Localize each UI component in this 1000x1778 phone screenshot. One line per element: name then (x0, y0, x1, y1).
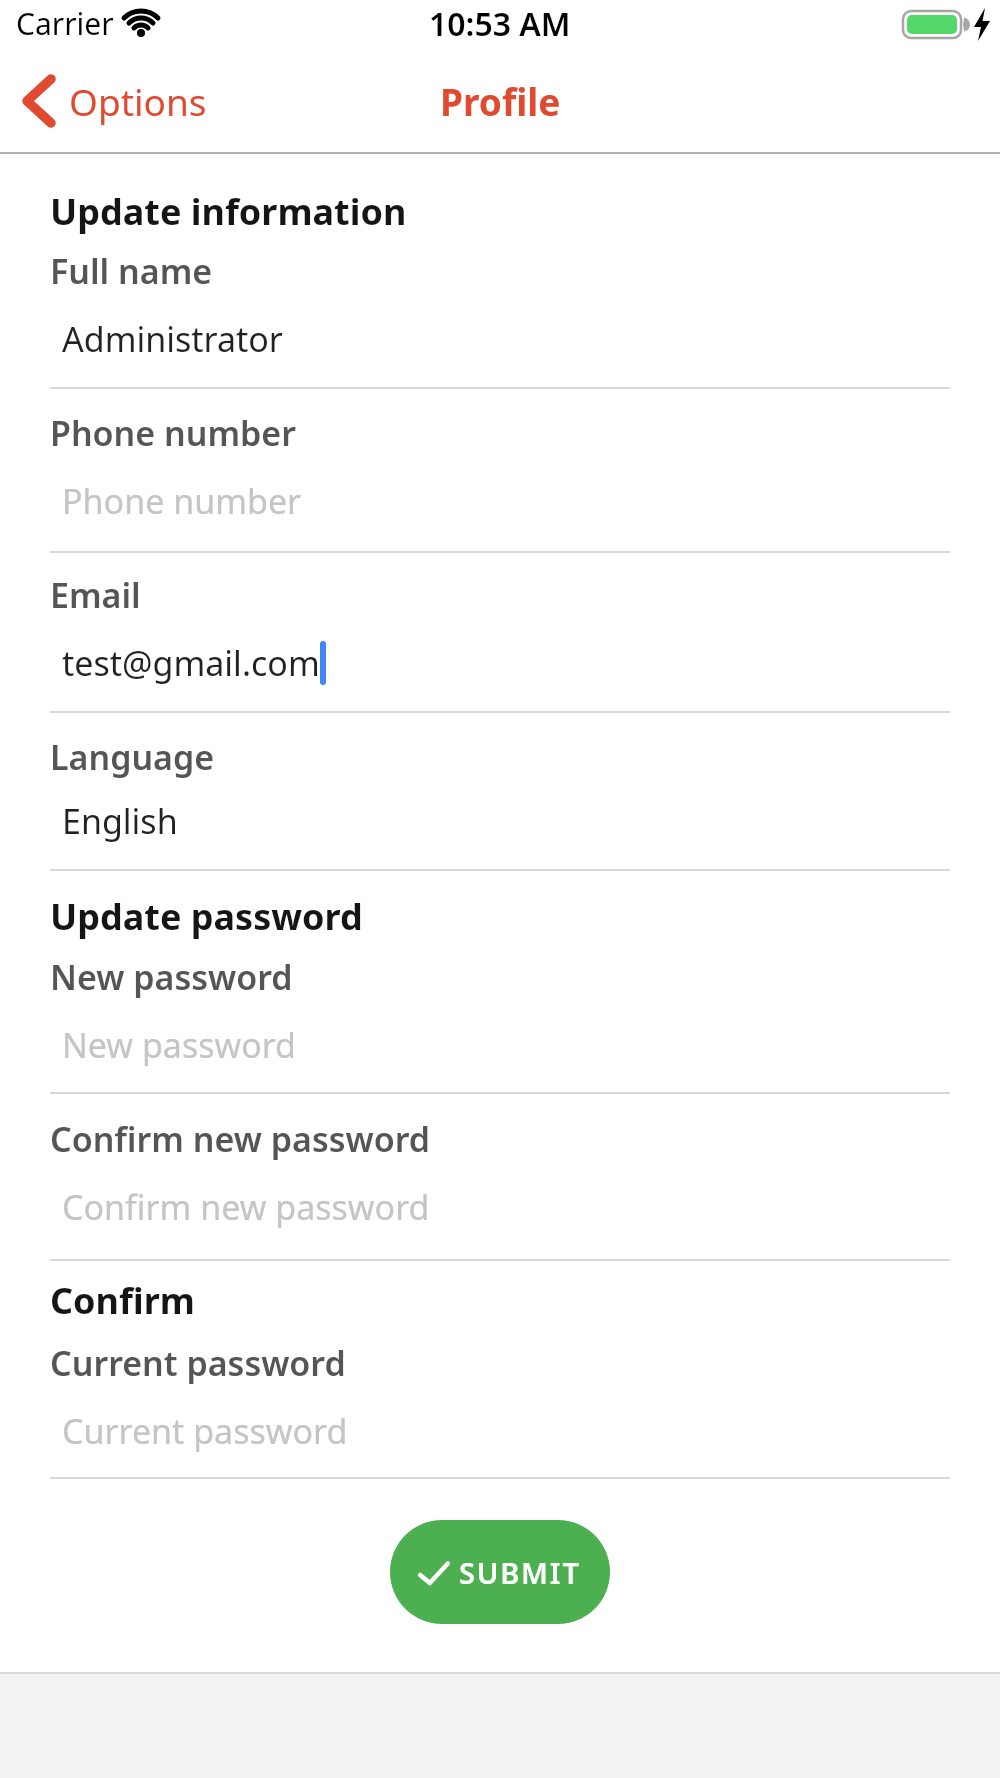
staticText: English (62, 798, 178, 844)
staticText: test@gmail.com (62, 640, 320, 686)
button[interactable] (50, 472, 950, 553)
staticText: Options (69, 76, 207, 126)
button[interactable] (50, 1016, 950, 1094)
staticText: Confirm new password (62, 1184, 430, 1230)
button[interactable] (50, 792, 950, 871)
staticText: Phone number (50, 410, 296, 456)
staticText: Update password (50, 892, 363, 941)
button[interactable]: Options (0, 75, 207, 127)
staticText: Confirm new password (50, 1116, 431, 1162)
staticText: Current password (50, 1340, 346, 1386)
staticText: Profile (440, 76, 561, 126)
staticText: Current password (62, 1408, 348, 1454)
button[interactable] (50, 634, 950, 713)
staticText: Administrator (62, 316, 283, 362)
staticText: New password (62, 1022, 297, 1068)
button[interactable] (50, 1402, 950, 1479)
staticText: Full name (50, 248, 213, 294)
button[interactable]: SUBMIT (390, 1520, 610, 1624)
staticText: Confirm (50, 1276, 195, 1325)
staticText: Language (50, 734, 215, 780)
staticText: Carrier (16, 3, 114, 44)
staticText: 10:53 AM (429, 2, 571, 46)
button[interactable] (50, 308, 950, 389)
staticText: Update information (50, 187, 407, 236)
staticText: SUBMIT (459, 1553, 581, 1592)
staticText: Phone number (62, 478, 302, 524)
button[interactable] (50, 1178, 950, 1261)
staticText: Email (50, 572, 141, 618)
staticText: New password (50, 954, 293, 1000)
